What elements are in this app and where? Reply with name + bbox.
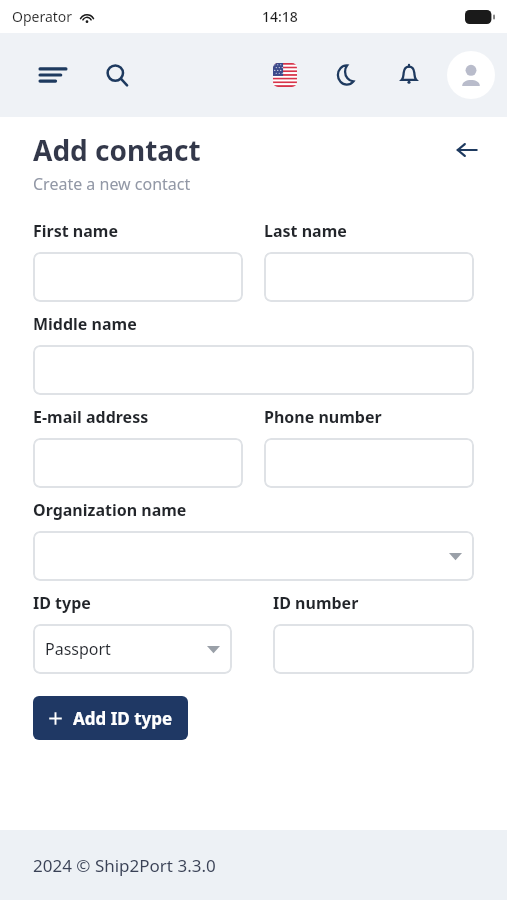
button[interactable]: Profile [447,51,495,99]
staticText: E-mail address [33,406,149,428]
staticText: Last name [264,220,347,242]
staticText: Middle name [33,313,137,335]
button[interactable]: Notifications [389,55,429,95]
button[interactable]: Menu [33,55,73,95]
button[interactable]: Dark mode [327,55,367,95]
button[interactable] [264,252,474,302]
button[interactable] [33,438,243,488]
staticText: Operator [12,7,73,26]
button[interactable]: Language [265,55,305,95]
staticText: Passport [45,638,111,660]
button[interactable] [264,438,474,488]
button[interactable] [33,531,474,581]
button[interactable]: Passport [33,624,232,674]
button[interactable]: Add ID type [33,696,188,740]
button[interactable] [273,624,474,674]
button[interactable] [33,345,474,395]
staticText: ID type [33,592,91,614]
staticText: First name [33,220,118,242]
staticText: Add ID type [73,707,173,730]
button[interactable]: Back [449,132,485,168]
staticText: Add contact [33,131,201,169]
staticText: 14:18 [262,7,298,26]
button[interactable]: Search [97,55,137,95]
staticText: 2024 © Ship2Port 3.3.0 [33,854,216,877]
staticText: ID number [273,592,359,614]
staticText: Phone number [264,406,382,428]
button[interactable] [33,252,243,302]
staticText: Organization name [33,499,187,521]
staticText: Create a new contact [33,173,191,195]
